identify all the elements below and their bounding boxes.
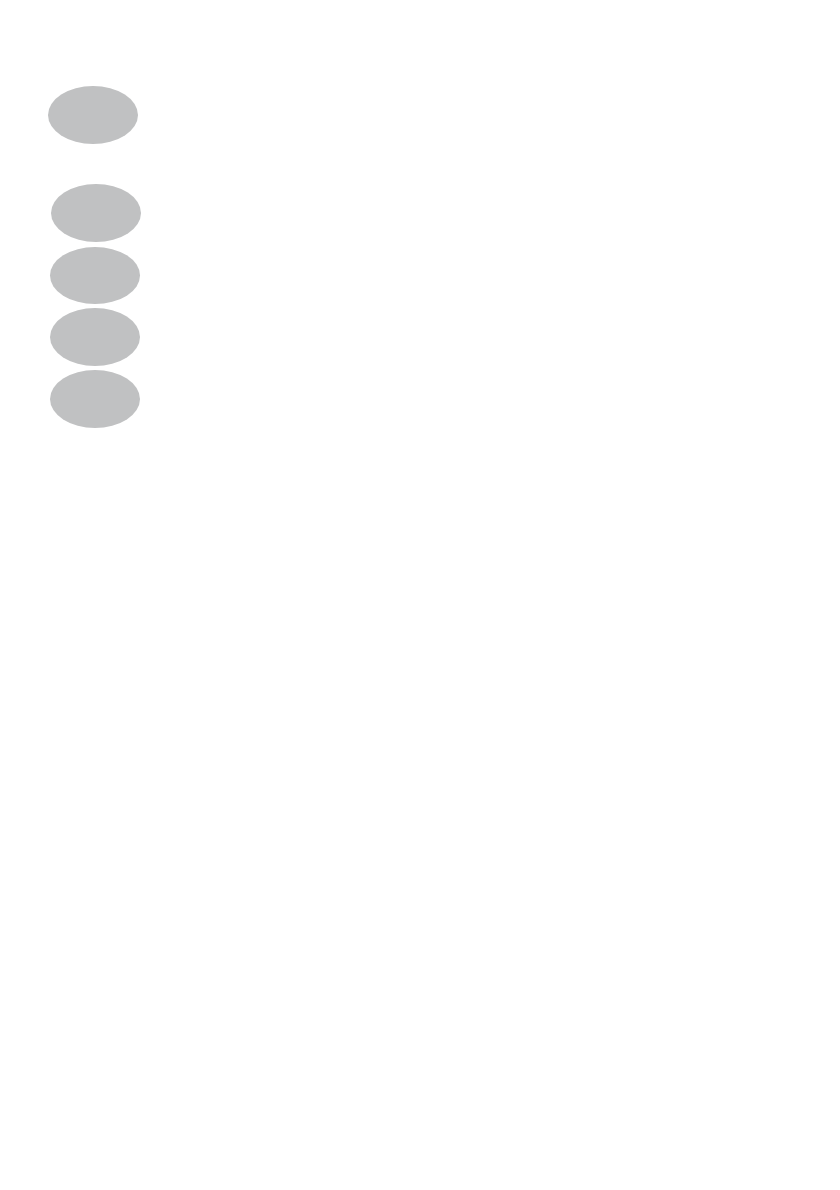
button[interactable]: List item 1 image [51, 184, 141, 242]
button[interactable]: List item 4 image [50, 370, 140, 428]
button[interactable]: List item 3 image [50, 308, 140, 366]
button[interactable]: List item 2 image [50, 247, 140, 304]
button[interactable]: Header image [48, 86, 138, 144]
